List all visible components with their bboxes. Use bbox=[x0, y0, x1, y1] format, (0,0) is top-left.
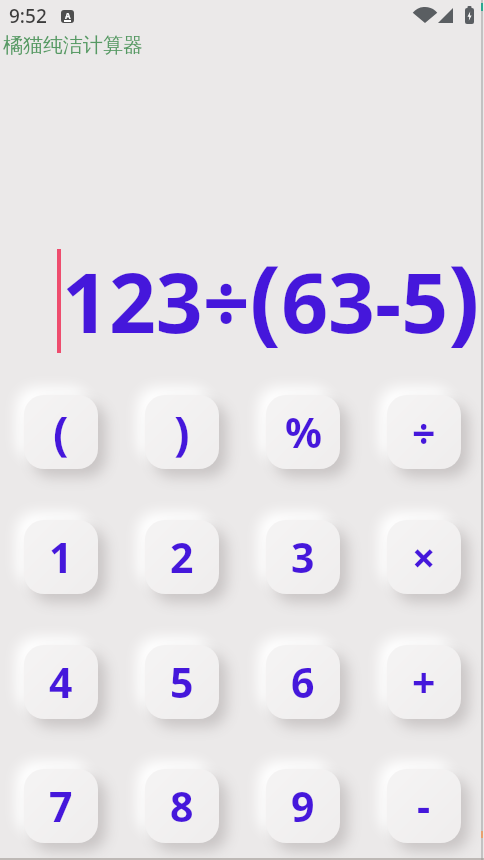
staticText: 123÷(63-5) bbox=[62, 234, 480, 361]
button[interactable]: 6 bbox=[266, 645, 340, 719]
staticText: 4 bbox=[49, 654, 73, 710]
staticText: × bbox=[412, 529, 436, 585]
button[interactable]: 8 bbox=[145, 769, 219, 843]
staticText: + bbox=[412, 654, 436, 710]
button[interactable]: ÷ bbox=[387, 395, 461, 469]
button[interactable]: × bbox=[387, 520, 461, 594]
staticText: ÷ bbox=[412, 404, 436, 460]
button[interactable]: + bbox=[387, 645, 461, 719]
button[interactable]: ) bbox=[145, 395, 219, 469]
staticText: 8 bbox=[170, 778, 194, 834]
staticText: 6 bbox=[291, 654, 315, 710]
button[interactable]: 7 bbox=[24, 769, 98, 843]
staticText: 7 bbox=[49, 778, 73, 834]
button[interactable]: 3 bbox=[266, 520, 340, 594]
button[interactable]: 4 bbox=[24, 645, 98, 719]
button[interactable]: 9 bbox=[266, 769, 340, 843]
staticText: 3 bbox=[291, 529, 315, 585]
staticText: ) bbox=[174, 401, 190, 464]
staticText: 2 bbox=[170, 529, 194, 585]
staticText: A bbox=[65, 10, 71, 21]
button[interactable]: - bbox=[387, 769, 461, 843]
staticText: 1 bbox=[49, 529, 73, 585]
staticText: % bbox=[285, 404, 322, 460]
button[interactable]: 2 bbox=[145, 520, 219, 594]
staticText: 5 bbox=[170, 654, 194, 710]
button[interactable]: ( bbox=[24, 395, 98, 469]
staticText: 9 bbox=[291, 778, 315, 834]
staticText: 9:52 bbox=[9, 3, 47, 29]
staticText: ( bbox=[53, 401, 69, 464]
button[interactable]: 5 bbox=[145, 645, 219, 719]
staticText: 橘猫纯洁计算器 bbox=[3, 33, 143, 58]
button[interactable]: % bbox=[266, 395, 340, 469]
button[interactable]: 1 bbox=[24, 520, 98, 594]
staticText: - bbox=[417, 778, 431, 834]
